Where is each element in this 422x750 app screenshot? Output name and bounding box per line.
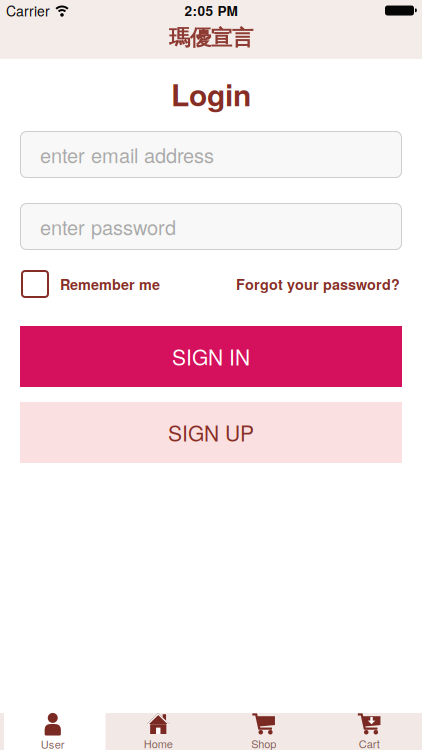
button[interactable]: enter email address bbox=[20, 131, 402, 178]
staticText: Remember me bbox=[60, 274, 160, 294]
staticText: SIGN IN bbox=[172, 341, 250, 372]
staticText: enter password bbox=[40, 212, 176, 241]
staticText: SIGN UP bbox=[168, 417, 254, 448]
staticText: enter email address bbox=[40, 140, 214, 169]
button[interactable]: Shop bbox=[211, 713, 316, 750]
button[interactable]: Home bbox=[105, 713, 211, 750]
staticText: Cart bbox=[359, 736, 380, 750]
staticText: 瑪優宣言 bbox=[169, 25, 253, 51]
staticText: User bbox=[41, 736, 65, 750]
staticText: Home bbox=[144, 736, 173, 750]
button[interactable]: Remember me bbox=[21, 270, 160, 298]
button[interactable]: enter password bbox=[20, 203, 402, 250]
button[interactable]: SIGN IN bbox=[20, 326, 402, 387]
staticText: Login bbox=[171, 72, 251, 115]
staticText: 2:05 PM bbox=[184, 1, 237, 20]
staticText: Carrier bbox=[6, 0, 50, 20]
staticText: Shop bbox=[251, 736, 276, 750]
button[interactable]: Forgot your password? bbox=[236, 274, 400, 294]
button[interactable]: Cart bbox=[316, 713, 422, 750]
button[interactable]: User bbox=[0, 713, 105, 750]
staticText: Forgot your password? bbox=[236, 274, 400, 294]
button[interactable]: SIGN UP bbox=[20, 402, 402, 463]
